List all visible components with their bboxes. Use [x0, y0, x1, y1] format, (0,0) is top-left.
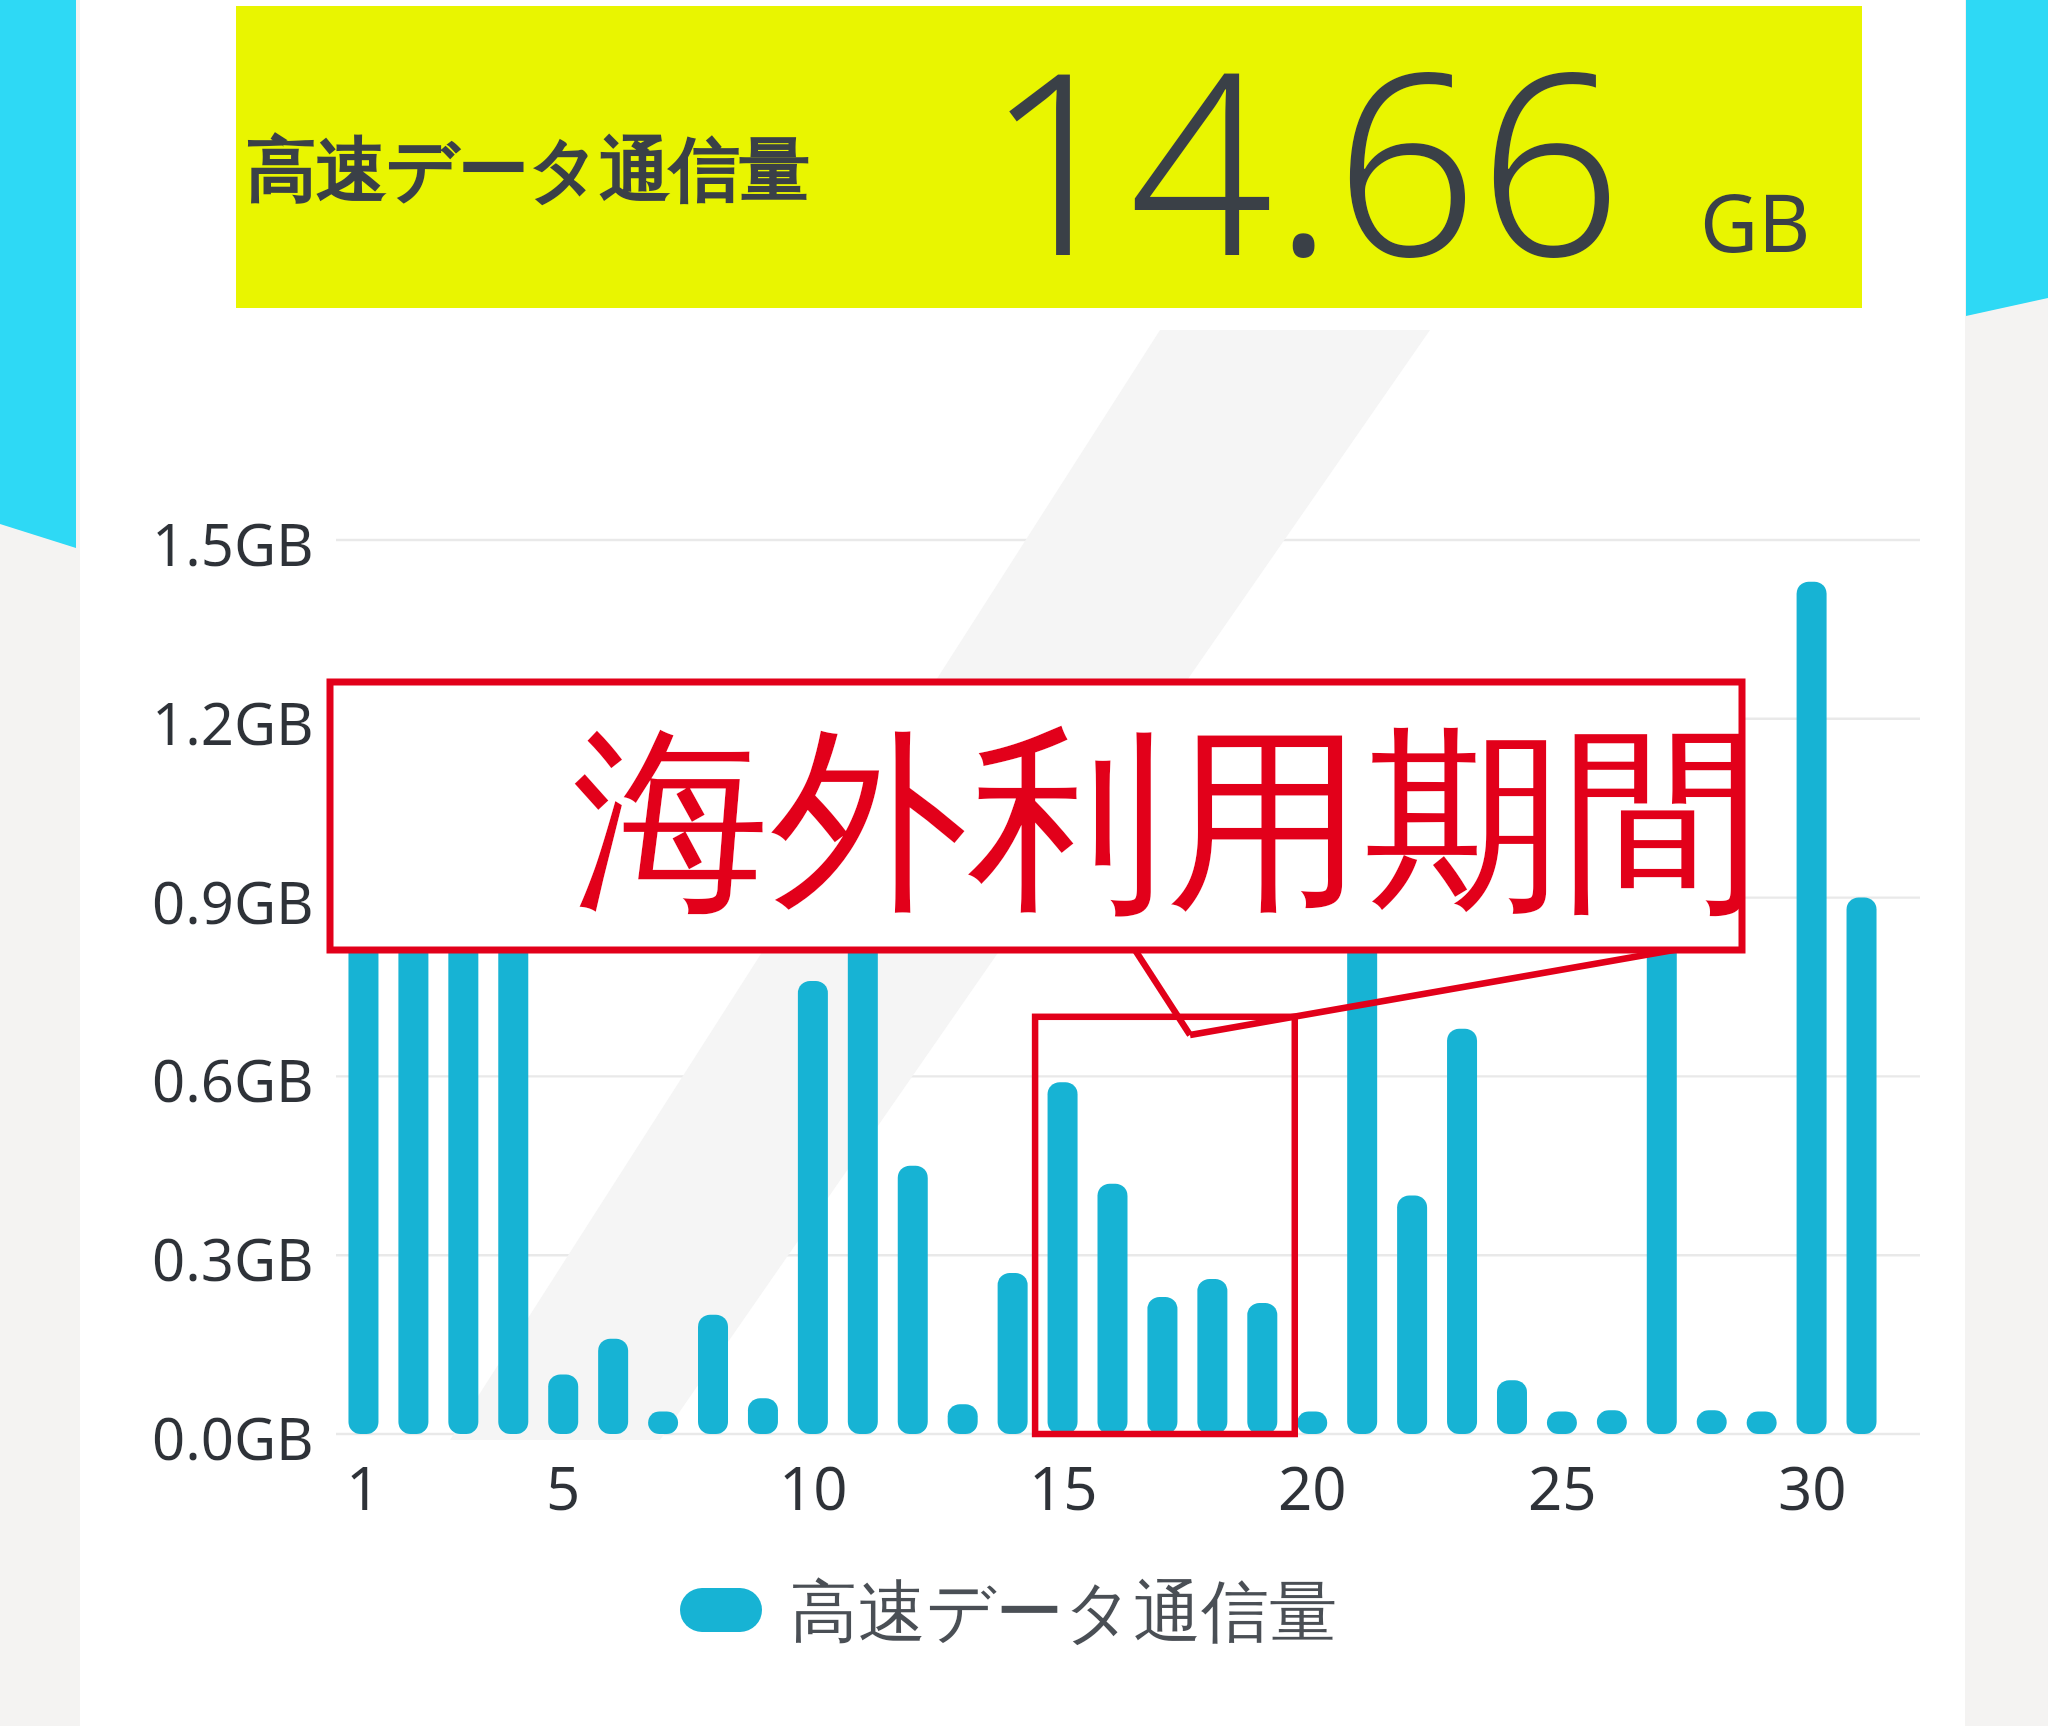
- staticText: 20: [1278, 1446, 1347, 1528]
- staticText: 15: [1029, 1446, 1098, 1528]
- staticText: 海外利用期間: [572, 698, 1760, 947]
- staticText: 0.6GB: [152, 1040, 314, 1119]
- staticText: 10: [779, 1446, 848, 1528]
- button[interactable]: 高速データ通信量: [790, 1570, 1338, 1656]
- staticText: GB: [1700, 166, 1811, 275]
- staticText: 14.66: [985, 0, 1623, 329]
- staticText: 25: [1528, 1446, 1597, 1528]
- staticText: 0.0GB: [152, 1398, 314, 1477]
- staticText: 1.2GB: [152, 683, 314, 762]
- staticText: 0.3GB: [152, 1219, 314, 1298]
- button[interactable]: High speed data usage: [245, 128, 809, 216]
- staticText: 高速データ通信量: [790, 1570, 1338, 1656]
- staticText: 1.5GB: [152, 504, 314, 583]
- staticText: 5: [546, 1446, 581, 1528]
- staticText: 30: [1778, 1446, 1847, 1528]
- staticText: 0.9GB: [152, 862, 314, 941]
- staticText: 高速データ通信量: [245, 128, 809, 216]
- staticText: 1: [346, 1446, 381, 1528]
